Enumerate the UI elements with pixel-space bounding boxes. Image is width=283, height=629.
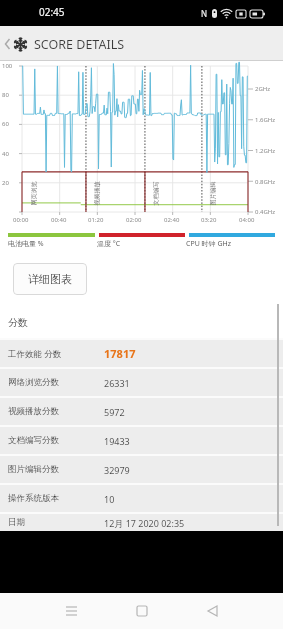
staticText: 文档编写 (151, 181, 159, 205)
staticText: 1.6GHz (255, 116, 276, 124)
button[interactable]: 详细图表 (13, 263, 87, 295)
staticText: 网页浏览 (29, 181, 37, 205)
staticText: 视频播放 (92, 181, 100, 205)
staticText: 40 (2, 150, 9, 158)
staticText: 操作系统版本 (8, 493, 59, 504)
staticText: 100 (2, 62, 13, 70)
staticText: 5972 (104, 406, 125, 418)
button[interactable]: 图片编辑分数 (0, 456, 283, 483)
staticText: 03:20 (201, 216, 217, 224)
staticText: 文档编写分数 (8, 435, 59, 446)
staticText: 17817 (104, 346, 136, 361)
staticText: 日期 (8, 517, 25, 528)
button[interactable]: Back (1, 32, 13, 56)
staticText: 工作效能 分数 (8, 348, 62, 360)
staticText: 12月 17 2020 02:35 (104, 517, 185, 529)
button[interactable]: Home (127, 596, 157, 626)
staticText: CPU 时钟 GHz (186, 239, 231, 249)
staticText: N (201, 8, 208, 19)
button[interactable]: Recent apps (56, 596, 86, 626)
staticText: 19433 (104, 435, 130, 447)
staticText: 00:00 (13, 216, 29, 224)
staticText: 1.2GHz (255, 147, 276, 155)
staticText: 0.8GHz (255, 178, 276, 186)
button[interactable]: Back (197, 596, 227, 626)
staticText: 02:00 (126, 216, 142, 224)
staticText: 0.4GHz (255, 208, 276, 216)
staticText: 分数 (8, 316, 28, 329)
staticText: 02:40 (164, 216, 180, 224)
staticText: 04:00 (239, 216, 255, 224)
staticText: SCORE DETAILS (34, 36, 125, 53)
staticText: 详细图表 (28, 272, 72, 286)
staticText: 图片编辑 (208, 181, 216, 205)
staticText: 20 (2, 179, 9, 187)
staticText: 电池电量 % (8, 239, 44, 249)
staticText: 10 (104, 493, 115, 505)
staticText: 00:40 (51, 216, 67, 224)
staticText: 26331 (104, 377, 130, 389)
staticText: 80 (2, 91, 9, 99)
button[interactable]: 网络浏览分数 (0, 369, 283, 396)
button[interactable]: 日期 (0, 514, 283, 531)
staticText: 网络浏览分数 (8, 377, 59, 388)
button[interactable]: 视频播放分数 (0, 398, 283, 425)
staticText: 60 (2, 120, 9, 128)
staticText: 01:20 (88, 216, 104, 224)
button[interactable]: 文档编写分数 (0, 427, 283, 454)
staticText: 图片编辑分数 (8, 464, 59, 475)
staticText: 温度 °C (97, 239, 121, 249)
staticText: 02:45 (39, 5, 65, 19)
button[interactable]: 工作效能 分数 (0, 340, 283, 367)
staticText: 32979 (104, 464, 130, 476)
staticText: 2GHz (255, 85, 271, 93)
button[interactable]: 操作系统版本 (0, 485, 283, 512)
staticText: 视频播放分数 (8, 406, 59, 417)
